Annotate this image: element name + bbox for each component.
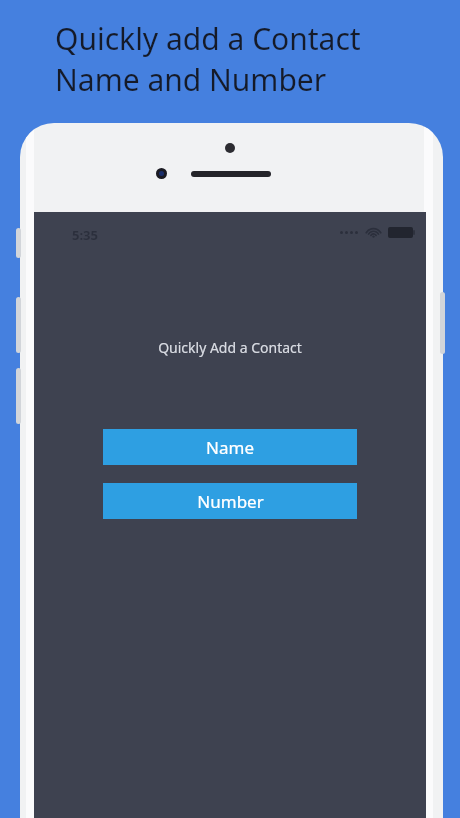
staticText: Quickly add a Contact <box>55 18 361 59</box>
staticText: Name <box>206 436 254 459</box>
button[interactable]: Name <box>103 429 357 465</box>
staticText: Number <box>197 490 264 513</box>
button[interactable]: Number <box>103 483 357 519</box>
staticText: 5:35 <box>72 226 98 244</box>
staticText: Name and Number <box>55 59 327 100</box>
staticText: Quickly Add a Contact <box>158 338 302 357</box>
